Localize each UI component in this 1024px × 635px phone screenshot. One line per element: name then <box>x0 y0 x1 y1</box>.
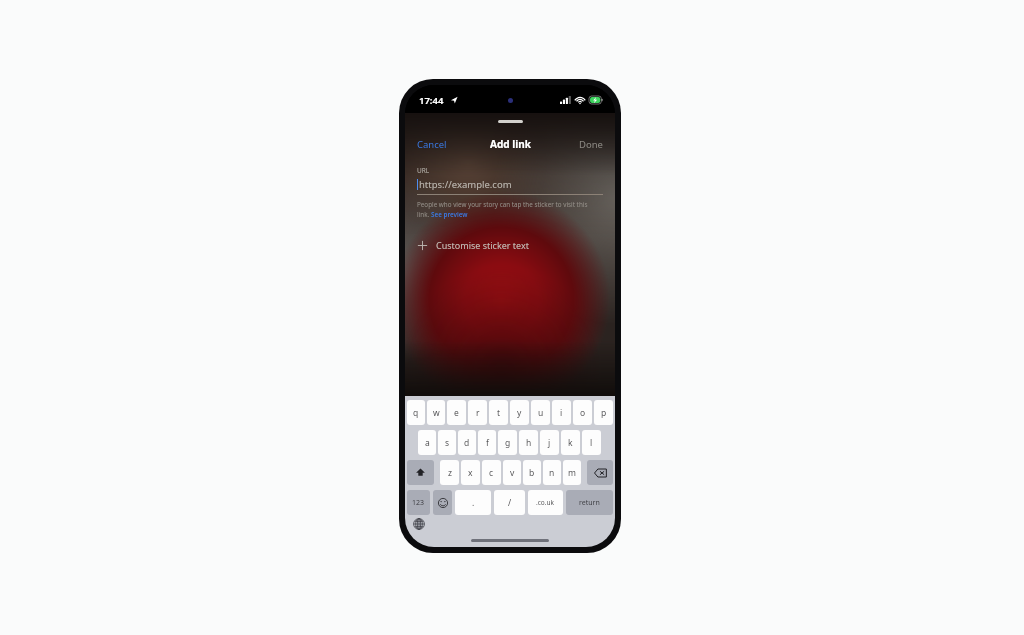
button[interactable]: .co.uk <box>528 490 563 515</box>
staticText: b <box>529 467 535 479</box>
button[interactable]: y <box>510 400 529 425</box>
staticText: . <box>472 497 475 509</box>
button[interactable]: z <box>440 460 459 485</box>
button[interactable]: o <box>573 400 592 425</box>
button[interactable]: n <box>543 460 561 485</box>
button[interactable]: m <box>563 460 581 485</box>
staticText: Cancel <box>417 138 447 151</box>
button[interactable]: . <box>455 490 491 515</box>
button[interactable]: t <box>489 400 508 425</box>
button[interactable]: Shift <box>407 460 434 485</box>
staticText: p <box>601 407 607 419</box>
staticText: s <box>445 437 450 449</box>
staticText: 17:44 <box>419 94 444 107</box>
button[interactable]: Change keyboard <box>411 516 427 532</box>
staticText: Customise sticker text <box>436 239 530 251</box>
staticText: l <box>590 437 593 449</box>
staticText: x <box>468 467 473 479</box>
button[interactable]: j <box>540 430 559 455</box>
staticText: https://example.com <box>419 178 512 191</box>
button[interactable]: b <box>523 460 541 485</box>
staticText: .co.uk <box>536 498 555 507</box>
button[interactable]: a <box>418 430 436 455</box>
staticText: See preview <box>431 210 468 219</box>
button[interactable]: return <box>566 490 613 515</box>
button[interactable]: i <box>552 400 571 425</box>
button[interactable]: Emoji <box>433 490 452 515</box>
button[interactable]: p <box>594 400 613 425</box>
staticText: f <box>486 437 489 449</box>
button[interactable]: / <box>494 490 525 515</box>
staticText: m <box>568 467 576 479</box>
staticText: Add link <box>490 137 531 151</box>
staticText: v <box>510 467 515 479</box>
staticText: h <box>526 437 532 449</box>
button[interactable]: w <box>427 400 445 425</box>
button[interactable]: h <box>519 430 538 455</box>
staticText: z <box>448 467 452 479</box>
button[interactable]: x <box>461 460 480 485</box>
staticText: t <box>497 407 501 419</box>
button[interactable]: s <box>438 430 456 455</box>
staticText: n <box>549 467 555 479</box>
staticText: / <box>508 497 512 509</box>
button[interactable]: r <box>468 400 487 425</box>
button[interactable]: k <box>561 430 580 455</box>
staticText: o <box>580 407 586 419</box>
staticText: w <box>433 407 440 419</box>
button[interactable]: Cancel <box>405 135 459 154</box>
button[interactable]: g <box>498 430 517 455</box>
staticText: i <box>560 407 563 419</box>
button[interactable]: e <box>447 400 466 425</box>
staticText: People who view your story can tap the s… <box>417 200 588 209</box>
staticText: Done <box>579 138 603 151</box>
staticText: link. <box>417 210 431 219</box>
staticText: return <box>579 498 600 508</box>
button[interactable]: q <box>407 400 425 425</box>
button[interactable]: 123 <box>407 490 430 515</box>
button[interactable]: c <box>482 460 501 485</box>
other: Add <box>417 240 428 251</box>
button[interactable]: v <box>503 460 521 485</box>
button[interactable]: d <box>458 430 476 455</box>
staticText: a <box>425 437 430 449</box>
button[interactable]: l <box>582 430 601 455</box>
button[interactable]: See preview <box>431 210 468 219</box>
staticText: g <box>505 437 511 449</box>
staticText: c <box>489 467 494 479</box>
staticText: q <box>413 407 419 419</box>
button[interactable]: Done <box>567 135 615 154</box>
button[interactable]: u <box>531 400 550 425</box>
staticText: u <box>538 407 544 419</box>
staticText: d <box>464 437 470 449</box>
button[interactable]: Add <box>405 234 615 256</box>
staticText: 123 <box>412 498 425 508</box>
staticText: k <box>568 437 573 449</box>
staticText: URL <box>417 166 430 175</box>
staticText: y <box>517 407 522 419</box>
staticText: e <box>454 407 459 419</box>
staticText: j <box>548 437 551 449</box>
button[interactable]: f <box>478 430 496 455</box>
button[interactable]: Backspace <box>587 460 613 485</box>
staticText: r <box>476 407 480 419</box>
